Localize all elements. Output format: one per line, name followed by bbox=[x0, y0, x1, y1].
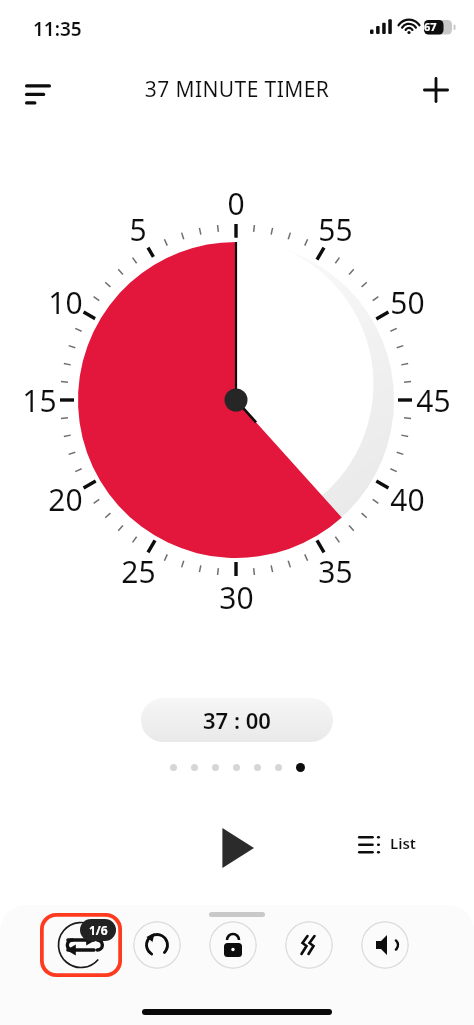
staticText: 20 bbox=[48, 479, 83, 519]
staticText: 30 bbox=[219, 577, 254, 617]
staticText: 5 bbox=[129, 209, 147, 249]
button[interactable]: Sound bbox=[361, 921, 409, 969]
staticText: 37 : 00 bbox=[203, 705, 271, 735]
staticText: 1/6 bbox=[89, 922, 108, 938]
staticText: 37 MINUTE TIMER bbox=[0, 75, 474, 104]
button[interactable]: Start timer bbox=[193, 805, 279, 891]
staticText: 25 bbox=[121, 551, 156, 591]
staticText: List bbox=[390, 833, 416, 853]
button[interactable]: Reset bbox=[133, 921, 181, 969]
staticText: 15 bbox=[22, 380, 57, 420]
staticText: 50 bbox=[390, 282, 425, 322]
button[interactable]: Add timer bbox=[412, 66, 460, 114]
button[interactable]: Lock bbox=[209, 921, 257, 969]
staticText: 35 bbox=[318, 551, 353, 591]
staticText: 11:35 bbox=[33, 16, 82, 42]
staticText: 67 bbox=[424, 19, 437, 34]
staticText: 45 bbox=[416, 380, 451, 420]
staticText: 10 bbox=[48, 282, 83, 322]
button[interactable]: List bbox=[340, 817, 466, 869]
staticText: 55 bbox=[318, 209, 353, 249]
button[interactable]: Repeat 1 of 6 bbox=[40, 913, 122, 977]
staticText: 40 bbox=[390, 479, 425, 519]
button[interactable]: Menu bbox=[14, 66, 62, 114]
staticText: 0 bbox=[227, 183, 245, 223]
button[interactable]: 37 : 00 bbox=[141, 698, 333, 742]
button[interactable]: Vibrate bbox=[285, 921, 333, 969]
